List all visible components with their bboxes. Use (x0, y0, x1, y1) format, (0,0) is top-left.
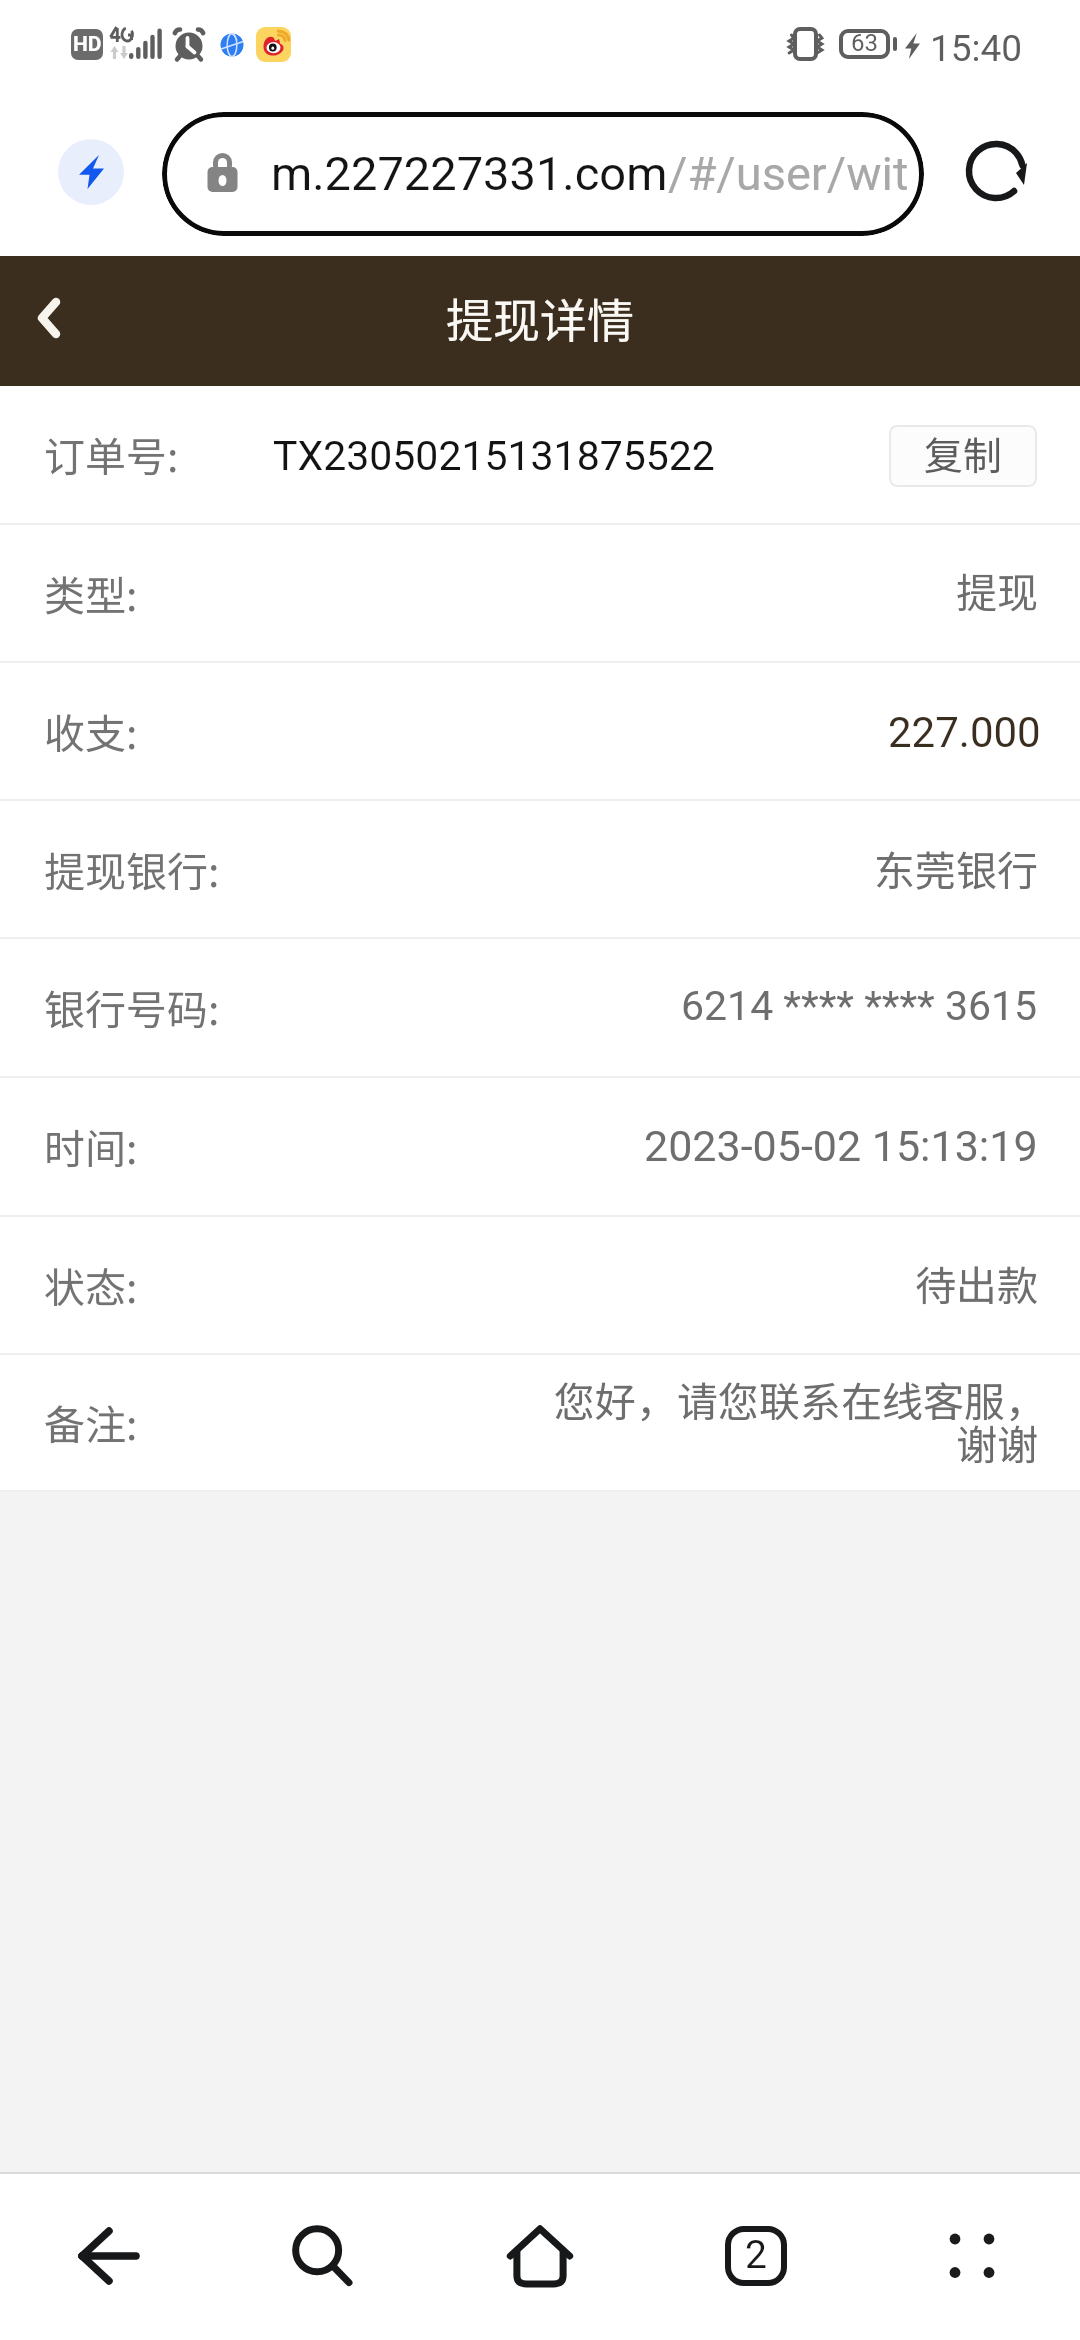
staticText: 您好，请您联系在线客服， (554, 1369, 1046, 1428)
staticText: 提现详情 (446, 283, 634, 351)
button[interactable]: More options (906, 2190, 1038, 2322)
staticText: 2 (745, 2232, 767, 2278)
staticText: 63 (851, 29, 878, 57)
staticText: 提现银行: (44, 839, 220, 898)
staticText: HD (73, 32, 102, 57)
staticText: 待出款 (915, 1253, 1038, 1312)
button[interactable]: Back (0, 256, 98, 386)
button[interactable]: Home (474, 2190, 606, 2322)
staticText: 东莞银行 (874, 838, 1038, 897)
button[interactable]: 复制 (889, 425, 1037, 487)
button[interactable]: Tabs (690, 2190, 822, 2322)
button[interactable]: Reload (950, 125, 1042, 217)
button[interactable]: Search (254, 2190, 384, 2322)
staticText: 时间: (44, 1116, 138, 1175)
button[interactable]: m.227227331.com (162, 112, 924, 236)
staticText: 状态: (44, 1255, 138, 1314)
staticText: 银行号码: (44, 977, 220, 1036)
staticText: 类型: (44, 563, 138, 622)
staticText: /#/user/wit (668, 146, 909, 201)
staticText: 复制 (924, 425, 1003, 481)
staticText: 谢谢 (956, 1412, 1038, 1471)
button[interactable]: Turbo mode (58, 139, 124, 205)
staticText: 15:40 (930, 27, 1023, 70)
staticText: 227.000 (888, 708, 1041, 757)
staticText: 提现 (956, 560, 1038, 619)
staticText: TX23050215131875522 (273, 432, 715, 480)
staticText: 2023-05-02 15:13:19 (644, 1121, 1038, 1171)
button[interactable]: Back (40, 2190, 176, 2322)
staticText: 收支: (44, 701, 138, 760)
staticText: m.227227331.com (271, 146, 668, 201)
staticText: 备注: (44, 1392, 138, 1451)
staticText: 订单号: (44, 424, 179, 483)
staticText: 6214 **** **** 3615 (681, 982, 1038, 1030)
